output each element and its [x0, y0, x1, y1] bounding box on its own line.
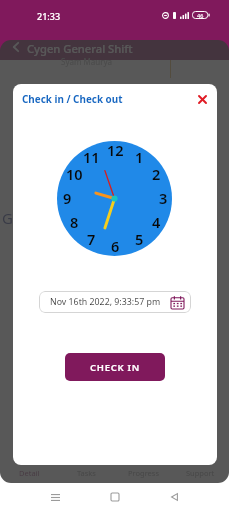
staticText: 8	[70, 212, 79, 232]
staticText: Tasks	[77, 468, 96, 478]
staticText: Cygen General Shift	[27, 41, 133, 56]
button[interactable]: Support	[172, 450, 229, 483]
staticText: 4	[152, 212, 161, 232]
staticText: 1	[135, 147, 144, 167]
staticText: 5	[135, 229, 144, 249]
button[interactable]: Close	[192, 89, 212, 109]
button[interactable]: CHECK IN	[65, 353, 165, 381]
staticText: Nov 16th 2022, 9:33:57 pm	[50, 296, 161, 308]
button[interactable]: Nov 16th 2022, 9:33:57 pm	[39, 291, 191, 313]
button[interactable]: Progress	[115, 450, 172, 483]
staticText: 9	[63, 188, 72, 208]
staticText: 2	[152, 164, 161, 184]
staticText: 46	[197, 12, 204, 19]
staticText: Detail	[19, 468, 40, 478]
button[interactable]: Back	[163, 486, 185, 508]
staticText: G	[2, 208, 13, 228]
staticText: CHECK IN	[90, 361, 140, 374]
staticText: Syam Maurya	[61, 56, 113, 67]
button[interactable]: Detail	[0, 450, 58, 483]
staticText: Check in / Check out	[22, 92, 123, 105]
button[interactable]: Home	[104, 486, 126, 508]
staticText: 7	[87, 229, 96, 249]
staticText: 21:33	[37, 10, 61, 22]
staticText: 12	[107, 140, 124, 160]
staticText: Progress	[128, 468, 159, 478]
staticText: 10	[66, 164, 83, 184]
staticText: Support	[186, 468, 215, 478]
staticText: 6	[111, 236, 120, 256]
staticText: 11	[83, 147, 100, 167]
button[interactable]: Recent apps	[44, 486, 66, 508]
button[interactable]: Tasks	[58, 450, 115, 483]
button[interactable]: Back	[6, 37, 25, 56]
staticText: 3	[159, 188, 168, 208]
